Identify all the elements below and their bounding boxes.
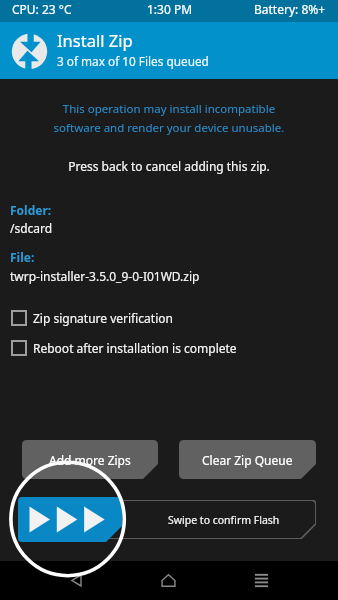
staticText: /sdcard [10,220,53,236]
button[interactable]: Add more Zips [22,440,158,479]
staticText: File: [10,249,35,265]
button[interactable]: Swipe to confirm Flash [22,500,316,539]
button[interactable]: Zip signature verification [0,310,338,326]
staticText: Add more Zips [49,452,131,468]
staticText: 3 of max of 10 Files queued [57,53,209,69]
staticText: This operation may install incompatible … [0,101,338,135]
staticText: Reboot after installation is complete [33,340,237,356]
button[interactable]: Clear Zip Queue [179,440,316,479]
staticText: Folder: [10,202,52,218]
button[interactable]: Back [57,561,95,599]
staticText: 1:30 PM [147,1,193,17]
button[interactable]: Swipe to confirm Flash [18,497,122,542]
staticText: Clear Zip Queue [202,452,293,468]
other: TWRP [11,33,48,70]
staticText: twrp-installer-3.5.0_9-0-I01WD.zip [10,268,200,284]
button[interactable]: Home [149,561,187,599]
staticText: Zip signature verification [33,310,173,326]
button[interactable]: Recent apps [242,561,280,599]
staticText: Install Zip [57,29,133,51]
staticText: Swipe to confirm Flash [168,513,280,527]
button[interactable]: Reboot after installation is complete [0,340,338,356]
staticText: CPU: 23 °C [12,1,72,17]
staticText: Press back to cancel adding this zip. [0,158,338,174]
staticText: Battery: 8%+ [254,1,326,17]
